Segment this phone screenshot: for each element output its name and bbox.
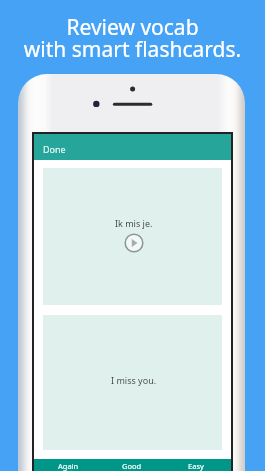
button[interactable]: Good	[99, 459, 165, 471]
button[interactable]: Done	[34, 134, 231, 160]
staticText: Again	[58, 461, 79, 471]
staticText: Good	[122, 461, 142, 471]
staticText: Done	[43, 143, 66, 155]
other: Play audio	[124, 233, 144, 253]
staticText: Review vocab with smart flashcards.	[0, 13, 265, 63]
button[interactable]: Easy	[165, 459, 231, 471]
staticText: Easy	[188, 461, 204, 471]
button[interactable]: Ik mis je.	[43, 168, 222, 305]
button[interactable]: Again	[34, 459, 99, 471]
staticText: I miss you.	[111, 374, 157, 386]
staticText: Ik mis je.	[115, 217, 153, 229]
button[interactable]: I miss you.	[43, 315, 222, 450]
